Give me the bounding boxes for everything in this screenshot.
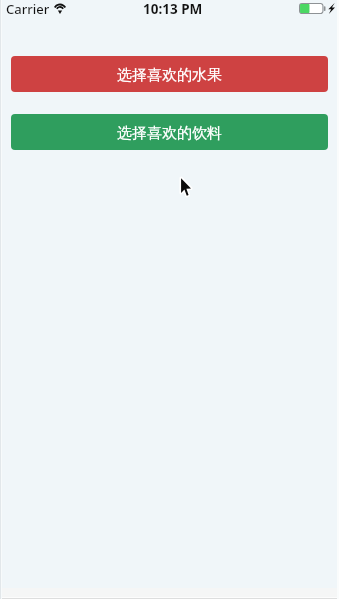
staticText: Carrier	[6, 0, 50, 18]
button[interactable]: 选择喜欢的饮料	[11, 114, 328, 150]
staticText: 选择喜欢的饮料	[117, 124, 222, 143]
other: Wi-Fi signal	[53, 4, 67, 15]
other: Charging	[328, 3, 335, 14]
staticText: 选择喜欢的水果	[117, 66, 222, 85]
staticText: 10:13 PM	[143, 0, 203, 18]
other: Battery 45 percent	[299, 3, 325, 14]
button[interactable]: 选择喜欢的水果	[11, 56, 328, 92]
